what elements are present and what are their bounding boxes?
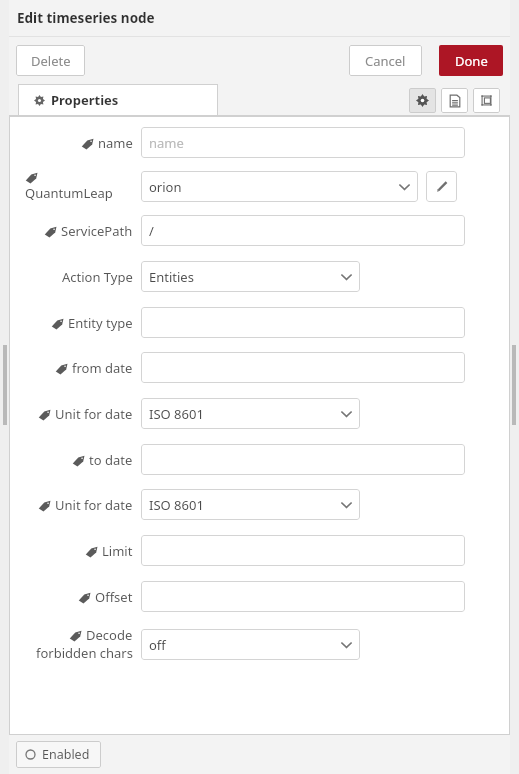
- button[interactable]: Description: [441, 88, 468, 113]
- button[interactable]: Properties: [18, 84, 218, 116]
- staticText: ServicePath: [61, 222, 133, 240]
- button[interactable]: Delete: [16, 45, 85, 76]
- staticText: Edit timeseries node: [17, 9, 155, 27]
- button[interactable]: Done: [439, 45, 503, 76]
- button[interactable]: [141, 581, 465, 612]
- staticText: name: [149, 134, 184, 152]
- staticText: Enabled: [42, 746, 90, 763]
- staticText: off: [149, 636, 166, 654]
- button[interactable]: off: [141, 629, 360, 660]
- staticText: ISO 8601: [149, 496, 204, 514]
- button[interactable]: orion: [141, 171, 418, 202]
- staticText: Delete: [31, 52, 71, 70]
- button[interactable]: Appearance: [473, 88, 500, 113]
- button[interactable]: Cancel: [349, 45, 422, 76]
- staticText: Unit for date: [55, 405, 133, 423]
- staticText: /: [149, 222, 154, 240]
- button[interactable]: ISO 8601: [141, 398, 360, 429]
- button[interactable]: Entities: [141, 261, 360, 292]
- button[interactable]: ISO 8601: [141, 489, 360, 520]
- staticText: Done: [455, 52, 488, 70]
- button[interactable]: [141, 307, 465, 338]
- button[interactable]: Properties view: [409, 88, 436, 113]
- staticText: Action Type: [62, 268, 133, 286]
- staticText: Unit for date: [55, 496, 133, 514]
- button[interactable]: [141, 352, 465, 383]
- staticText: Entities: [149, 268, 194, 286]
- staticText: Cancel: [365, 52, 406, 70]
- staticText: to date: [89, 451, 133, 469]
- button[interactable]: Edit QuantumLeap config: [426, 171, 457, 202]
- button[interactable]: [141, 535, 465, 566]
- button[interactable]: name: [141, 127, 465, 158]
- staticText: from date: [72, 359, 133, 377]
- button[interactable]: Enabled: [16, 741, 101, 768]
- staticText: ISO 8601: [149, 405, 204, 423]
- staticText: forbidden chars: [36, 644, 133, 662]
- staticText: orion: [149, 178, 182, 196]
- staticText: Offset: [95, 588, 133, 606]
- button[interactable]: /: [141, 215, 465, 246]
- staticText: Entity type: [68, 314, 133, 332]
- staticText: name: [98, 134, 133, 152]
- staticText: Limit: [102, 542, 133, 560]
- staticText: QuantumLeap: [25, 184, 113, 202]
- button[interactable]: [141, 444, 465, 475]
- staticText: Decode: [86, 626, 133, 644]
- staticText: Properties: [51, 91, 119, 109]
